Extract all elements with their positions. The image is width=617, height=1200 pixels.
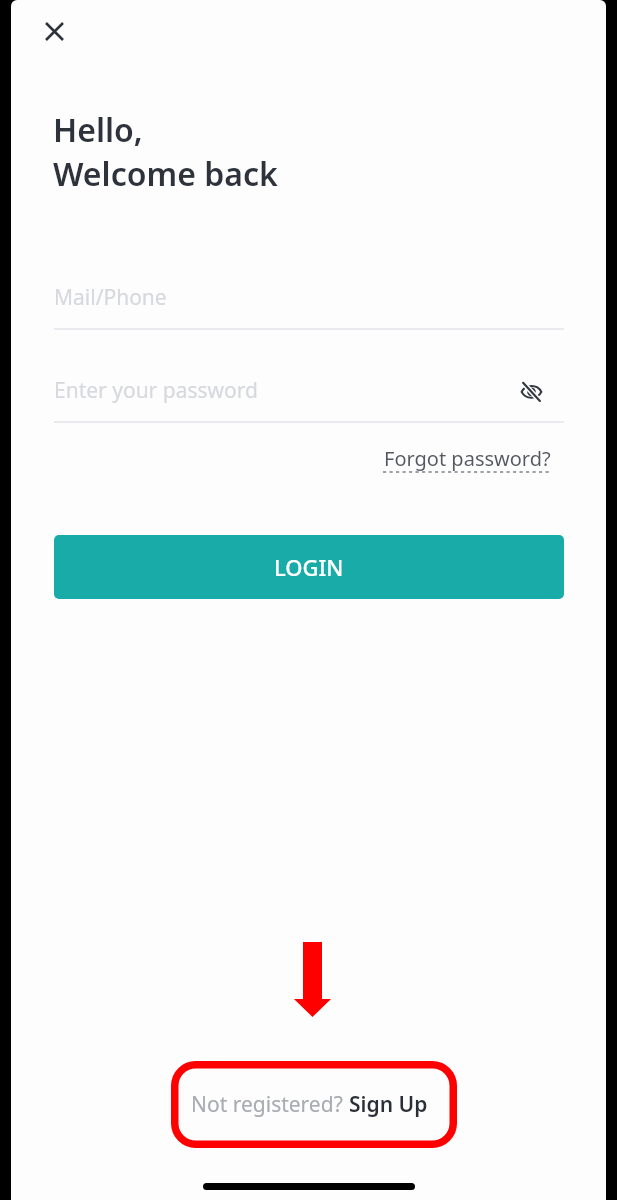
button[interactable]: Show password [511,371,551,411]
button[interactable]: LOGIN [54,535,564,599]
button[interactable]: Enter your password [54,364,494,423]
staticText: Enter your password [54,376,258,405]
staticText: Welcome back [53,152,278,196]
staticText: Mail/Phone [54,283,167,312]
button[interactable]: Mail/Phone [54,271,564,330]
button[interactable]: Close [33,10,75,52]
staticText: Forgot password? [384,445,551,472]
staticText: Hello, [53,108,143,152]
staticText: Not registered? [191,1090,349,1119]
button[interactable]: Not registered? [171,1061,457,1148]
staticText: LOGIN [274,552,344,582]
button[interactable]: Forgot password? [376,437,552,479]
staticText: Sign Up [349,1090,428,1119]
